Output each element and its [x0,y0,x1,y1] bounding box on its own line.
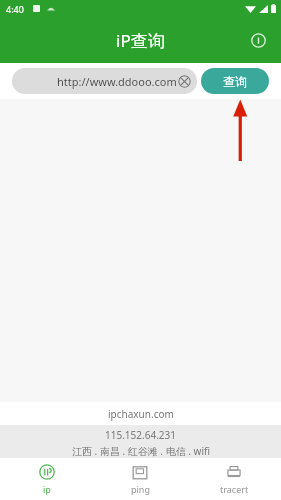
staticText: tracert [220,483,249,495]
staticText: ip [43,483,51,495]
button[interactable]: ping [93,458,187,500]
staticText: 查询 [223,74,247,89]
staticText: ping [131,483,150,495]
staticText: 115.152.64.231 [105,428,176,442]
staticText: 4:40 [6,3,24,15]
staticText: 江西 . 南昌 . 红谷滩 . 电信 . wifi [72,444,210,458]
button[interactable]: ip [0,458,93,500]
staticText: iP查询 [116,29,165,52]
button[interactable]: tracert [187,458,281,500]
button[interactable]: 查询 [201,68,269,94]
staticText: ipchaxun.com [108,407,174,421]
button[interactable]: About [243,25,273,55]
staticText: http://www.ddooo.com [57,74,177,89]
button[interactable]: Clear text [178,75,191,88]
button[interactable]: http://www.ddooo.com [12,68,197,94]
